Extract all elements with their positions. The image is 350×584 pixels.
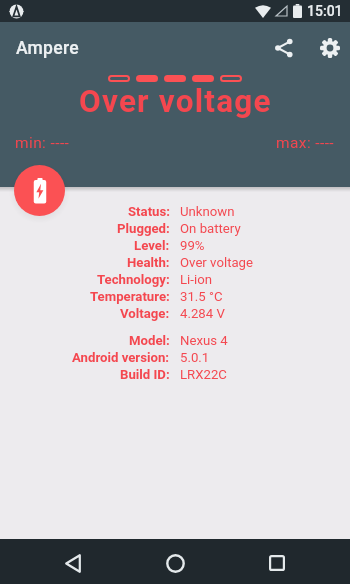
staticText: Technology: xyxy=(97,272,170,287)
staticText: Voltage: xyxy=(120,306,170,321)
staticText: Model: xyxy=(129,333,170,348)
staticText: On battery xyxy=(180,221,241,236)
staticText: Over voltage xyxy=(79,83,272,120)
staticText: 5.0.1 xyxy=(180,350,210,365)
staticText: Status: xyxy=(128,204,170,219)
staticText: Nexus 4 xyxy=(180,333,228,348)
button[interactable] xyxy=(38,542,108,584)
staticText: Build ID: xyxy=(120,367,170,382)
staticText: 15:01 xyxy=(307,3,343,19)
staticText: 31.5 °C xyxy=(180,289,223,304)
button[interactable] xyxy=(140,542,210,584)
button[interactable] xyxy=(264,28,304,68)
staticText: 4.284 V xyxy=(180,306,225,321)
button[interactable] xyxy=(310,28,350,68)
staticText: 99% xyxy=(180,238,205,253)
staticText: Level: xyxy=(134,238,170,253)
staticText: Over voltage xyxy=(180,255,254,270)
staticText: Android version: xyxy=(72,350,170,365)
staticText: min: ---- xyxy=(15,134,70,152)
staticText: max: ---- xyxy=(276,134,335,152)
staticText: Temperature: xyxy=(90,289,170,304)
staticText: Unknown xyxy=(180,204,235,219)
staticText: Ampere xyxy=(16,38,79,59)
staticText: Plugged: xyxy=(117,221,170,236)
staticText: Li-ion xyxy=(180,272,212,287)
staticText: Health: xyxy=(127,255,170,270)
staticText: LRX22C xyxy=(180,367,227,382)
button[interactable] xyxy=(14,165,65,216)
button[interactable] xyxy=(242,542,312,584)
